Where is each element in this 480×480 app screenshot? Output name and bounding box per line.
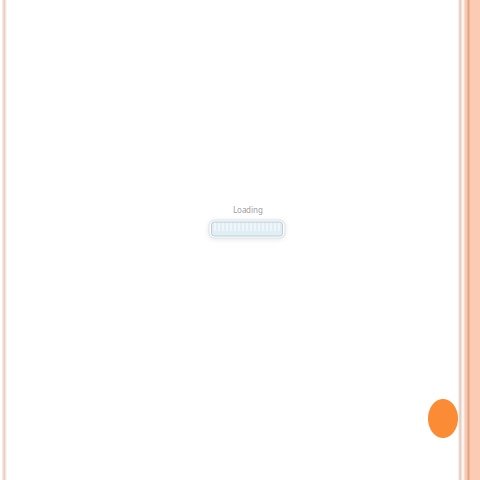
staticText: Loading	[233, 204, 263, 215]
button[interactable]: Compose	[428, 399, 458, 438]
